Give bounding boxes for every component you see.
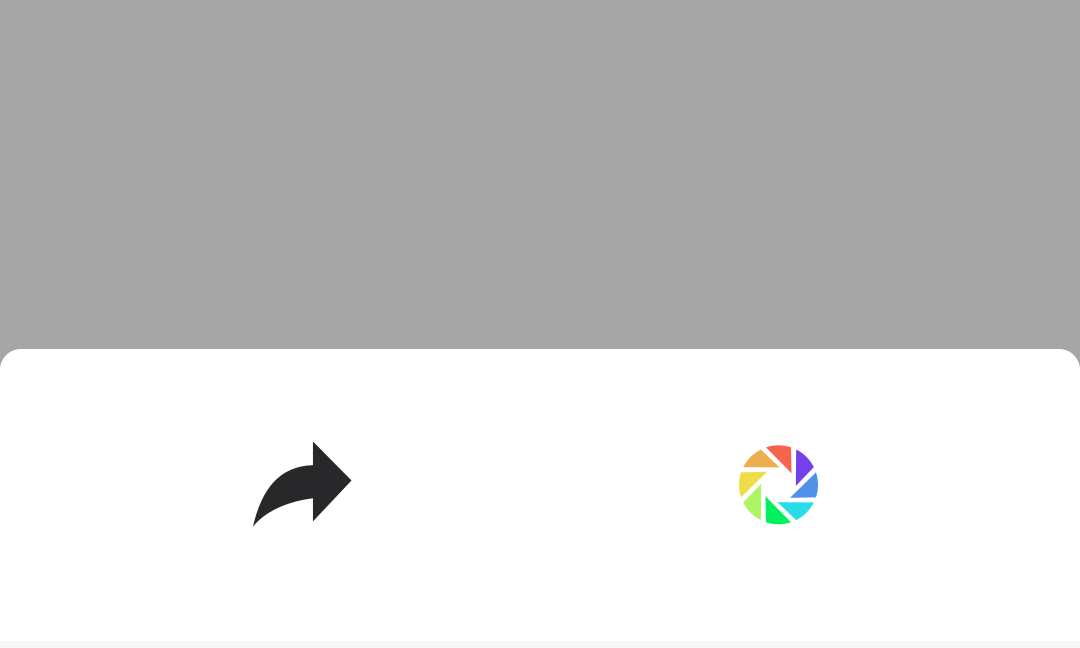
- button[interactable]: Share: [220, 409, 384, 559]
- button[interactable]: Open in Colour Wheel: [696, 410, 860, 560]
